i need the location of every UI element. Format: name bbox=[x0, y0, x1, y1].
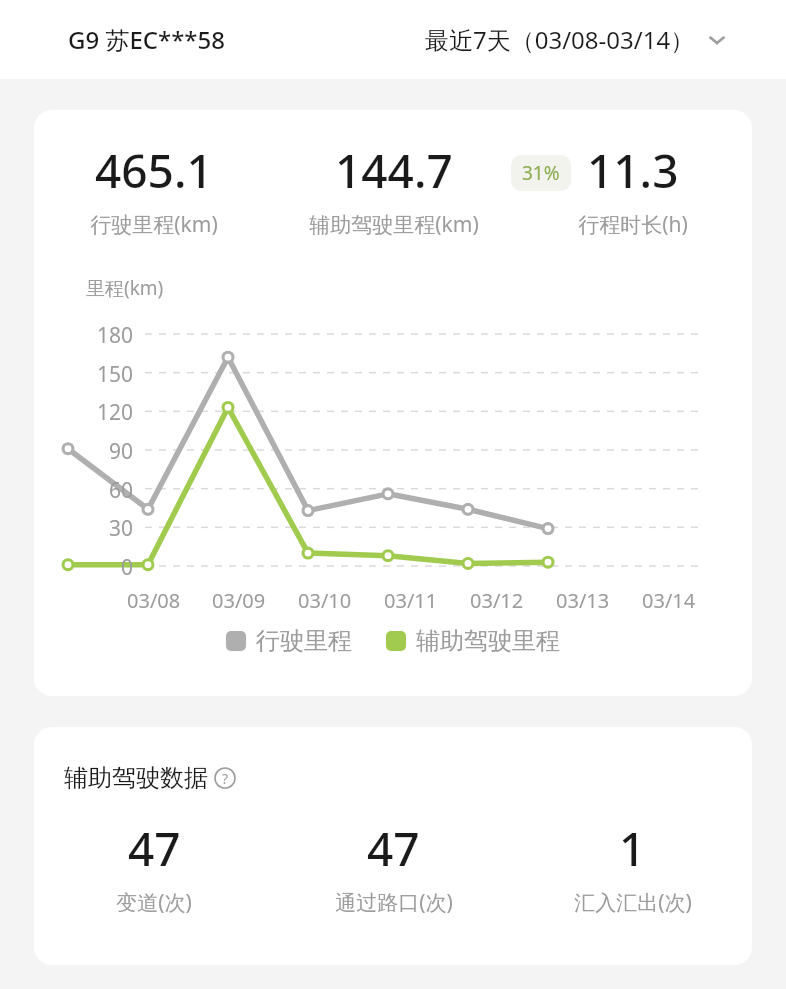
staticText: 47 bbox=[128, 817, 181, 880]
staticText: 辅助驾驶数据 bbox=[64, 763, 208, 793]
staticText: 1 bbox=[619, 817, 646, 880]
staticText: 行驶里程(km) bbox=[90, 210, 218, 239]
staticText: 03/14 bbox=[642, 587, 696, 614]
staticText: 汇入汇出(次) bbox=[574, 888, 692, 917]
other: Help about assisted driving data bbox=[214, 767, 236, 789]
staticText: 90 bbox=[109, 437, 134, 466]
staticText: 03/09 bbox=[212, 587, 266, 614]
staticText: 0 bbox=[121, 553, 134, 582]
staticText: 行程时长(h) bbox=[578, 210, 688, 239]
button[interactable]: 最近7天（03/08-03/14） bbox=[425, 23, 729, 56]
staticText: 变道(次) bbox=[116, 888, 192, 917]
staticText: 行驶里程 bbox=[256, 626, 352, 656]
staticText: 47 bbox=[367, 817, 420, 880]
staticText: 150 bbox=[97, 360, 134, 389]
staticText: ? bbox=[222, 769, 229, 788]
staticText: 465.1 bbox=[95, 139, 213, 202]
staticText: G9 苏EC***58 bbox=[68, 23, 225, 56]
staticText: 辅助驾驶里程 bbox=[416, 626, 560, 656]
staticText: 辅助驾驶里程(km) bbox=[309, 210, 479, 239]
staticText: 120 bbox=[97, 398, 134, 427]
staticText: 里程(km) bbox=[86, 275, 164, 301]
staticText: 03/13 bbox=[556, 587, 610, 614]
staticText: 31% bbox=[522, 160, 560, 186]
button[interactable]: 辅助驾驶数据 bbox=[64, 763, 236, 793]
staticText: 180 bbox=[97, 321, 134, 350]
staticText: 03/11 bbox=[384, 587, 438, 614]
staticText: 60 bbox=[109, 476, 134, 505]
staticText: 30 bbox=[109, 514, 134, 543]
staticText: 通过路口(次) bbox=[335, 888, 453, 917]
button[interactable]: 辅助驾驶里程 bbox=[386, 626, 560, 656]
staticText: 03/08 bbox=[127, 587, 181, 614]
staticText: 03/12 bbox=[470, 587, 524, 614]
button[interactable]: 行驶里程 bbox=[226, 626, 352, 656]
staticText: 03/10 bbox=[298, 587, 352, 614]
staticText: 11.3 bbox=[587, 139, 679, 202]
staticText: 144.7 bbox=[335, 139, 453, 202]
staticText: 最近7天（03/08-03/14） bbox=[425, 23, 695, 56]
